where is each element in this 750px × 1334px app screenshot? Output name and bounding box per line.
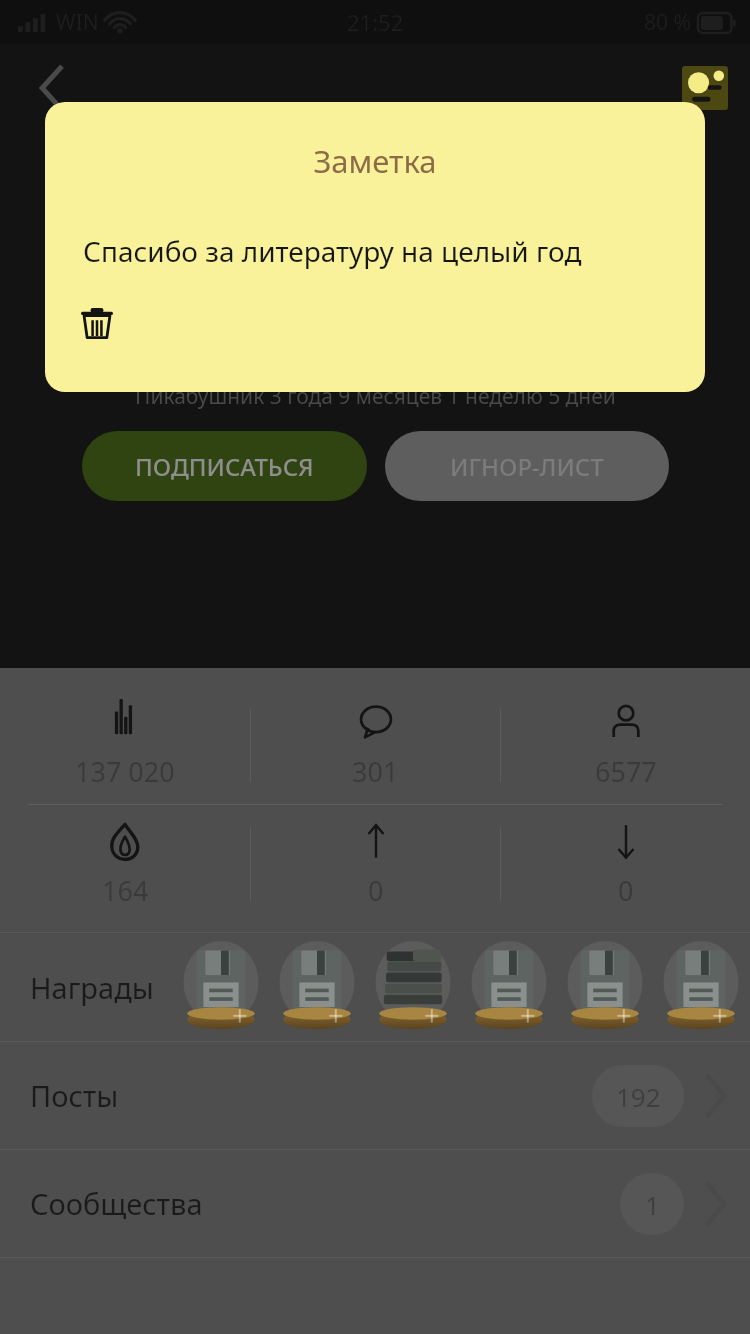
button[interactable]: ПОДПИСАТЬСЯ	[82, 431, 367, 501]
staticText: WIN	[56, 8, 99, 37]
staticText: 0	[368, 872, 384, 909]
button[interactable]: Посты	[0, 1042, 750, 1149]
button[interactable]: Удалить заметку	[71, 297, 123, 349]
button[interactable]: 0	[501, 805, 750, 923]
staticText: Посты	[30, 1076, 119, 1115]
button[interactable]: Назад	[20, 56, 84, 120]
staticText: 137 020	[75, 753, 175, 790]
staticText: 21:52	[347, 7, 404, 37]
staticText: Заметка	[313, 140, 437, 182]
staticText: Пикабушник 3 года 9 месяцев 1 неделю 5 д…	[135, 382, 616, 411]
button[interactable]: 164	[0, 805, 250, 923]
staticText: 0	[618, 872, 634, 909]
staticText: 6577	[595, 753, 657, 790]
button[interactable]: 6577	[501, 686, 750, 804]
staticText: 301	[352, 753, 399, 790]
staticText: 1	[645, 1187, 660, 1222]
button[interactable]: Сообщества	[0, 1150, 750, 1257]
staticText: 192	[616, 1079, 661, 1114]
staticText: Спасибо за литературу на целый год	[83, 232, 582, 270]
button[interactable]: Заметка	[45, 102, 705, 392]
staticText: ИГНОР-ЛИСТ	[450, 450, 604, 483]
button[interactable]: 0	[251, 805, 500, 923]
staticText: Награды	[30, 968, 154, 1007]
staticText: 164	[102, 872, 149, 909]
staticText: 80 %	[644, 8, 691, 37]
button[interactable]: ИГНОР-ЛИСТ	[385, 431, 669, 501]
staticText: ПОДПИСАТЬСЯ	[135, 450, 314, 483]
button[interactable]: 137 020	[0, 686, 250, 804]
button[interactable]: 301	[251, 686, 500, 804]
staticText: Сообщества	[30, 1184, 203, 1223]
button[interactable]: Награды	[0, 933, 750, 1041]
button[interactable]: Профиль	[682, 66, 728, 110]
